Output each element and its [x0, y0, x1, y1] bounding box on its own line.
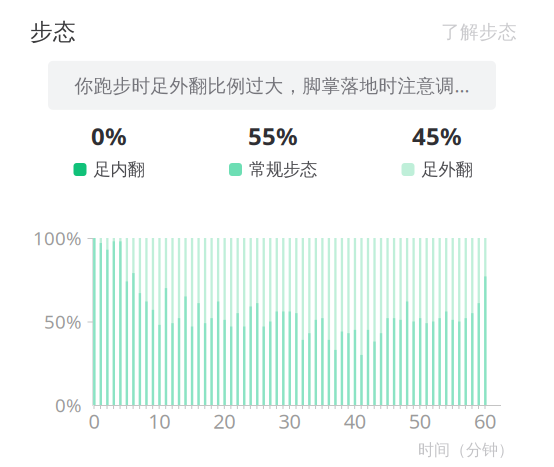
staticText: 30 [278, 408, 300, 434]
staticText: 20 [213, 408, 235, 434]
staticText: 40 [344, 408, 366, 434]
button[interactable]: 了解步态 [441, 20, 517, 43]
staticText: 步态 [30, 18, 76, 46]
staticText: 45% [412, 120, 462, 152]
staticText: 55% [248, 120, 298, 152]
staticText: 60 [474, 408, 496, 434]
staticText: 10 [148, 408, 170, 434]
staticText: 时间（分钟） [418, 440, 514, 460]
staticText: 0% [55, 393, 82, 417]
staticText: 50% [44, 309, 82, 334]
staticText: 常规步态 [249, 159, 317, 180]
staticText: 你跑步时足外翻比例过大，脚掌落地时注意调... [74, 73, 469, 98]
staticText: 足内翻 [93, 159, 144, 180]
staticText: 了解步态 [441, 20, 517, 43]
staticText: 0% [91, 120, 127, 152]
staticText: 100% [33, 226, 82, 250]
staticText: 0 [88, 408, 99, 434]
staticText: 足外翻 [421, 159, 472, 180]
staticText: 50 [409, 408, 431, 434]
